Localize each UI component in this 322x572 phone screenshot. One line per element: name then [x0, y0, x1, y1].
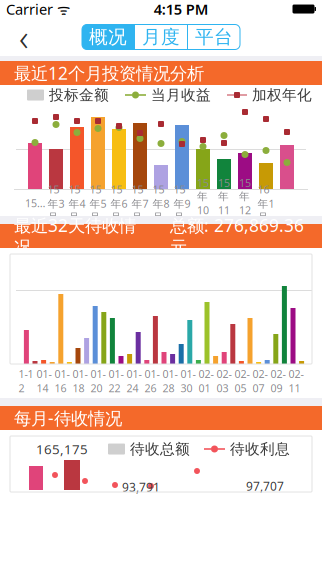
staticText: 平台 [195, 25, 233, 48]
staticText: 15… [25, 196, 45, 210]
button[interactable]: Back [2, 19, 46, 55]
staticText: 15年3月 [47, 182, 64, 224]
staticText: 15年8月 [152, 182, 169, 224]
staticText: 165,175 [36, 440, 88, 458]
staticText: 最近32天待收情况 [14, 214, 136, 258]
staticText: 15年5月 [89, 182, 106, 224]
staticText: 最近12个月投资情况分析 [14, 61, 204, 84]
staticText: 1-12 [18, 367, 33, 395]
staticText: 01-30 [180, 367, 195, 395]
staticText: 01-28 [162, 367, 177, 395]
staticText: 16年1月 [257, 182, 274, 224]
staticText: 4:15 PM [154, 0, 209, 19]
staticText: ‹ [19, 13, 29, 61]
staticText: 概况 [89, 25, 127, 48]
button[interactable]: 月度 [135, 24, 187, 49]
staticText: 15年11月 [218, 176, 230, 230]
staticText: 每月-待收情况 [14, 406, 122, 429]
staticText: 15年6月 [110, 182, 127, 224]
staticText: 待收利息 [230, 440, 290, 458]
button[interactable]: 平台 [188, 24, 240, 49]
staticText: 15年4月 [68, 182, 85, 224]
staticText: 01-14 [36, 367, 51, 395]
staticText: 97,707 [246, 478, 284, 494]
staticText: 15年10月 [197, 176, 209, 230]
staticText: Carrier [6, 0, 53, 19]
staticText: 01-18 [72, 367, 87, 395]
staticText: 01-24 [126, 367, 141, 395]
staticText: ᯤ [53, 0, 70, 19]
staticText: 01-22 [108, 367, 123, 395]
staticText: 加权年化 [252, 86, 312, 104]
staticText: 02-09 [270, 367, 285, 395]
staticText: 02-01 [198, 367, 213, 395]
staticText: 15年7月 [131, 182, 148, 224]
staticText: 02-03 [216, 367, 231, 395]
staticText: 15年12月 [239, 176, 251, 230]
staticText: 02-05 [234, 367, 249, 395]
staticText: 总额: 276,869.36 元 [170, 214, 304, 258]
staticText: 投标金额 [49, 86, 109, 104]
staticText: 01-20 [90, 367, 105, 395]
staticText: 01-16 [54, 367, 69, 395]
staticText: 01-26 [144, 367, 159, 395]
staticText: 月度 [142, 25, 180, 48]
staticText: 02-07 [252, 367, 267, 395]
staticText: 93,791 [122, 479, 160, 495]
button[interactable]: 概况 [82, 24, 134, 49]
staticText: 待收总额 [130, 440, 190, 458]
staticText: 当月收益 [151, 86, 211, 104]
staticText: 15年9月 [173, 182, 190, 224]
staticText: 02-11 [288, 367, 303, 395]
